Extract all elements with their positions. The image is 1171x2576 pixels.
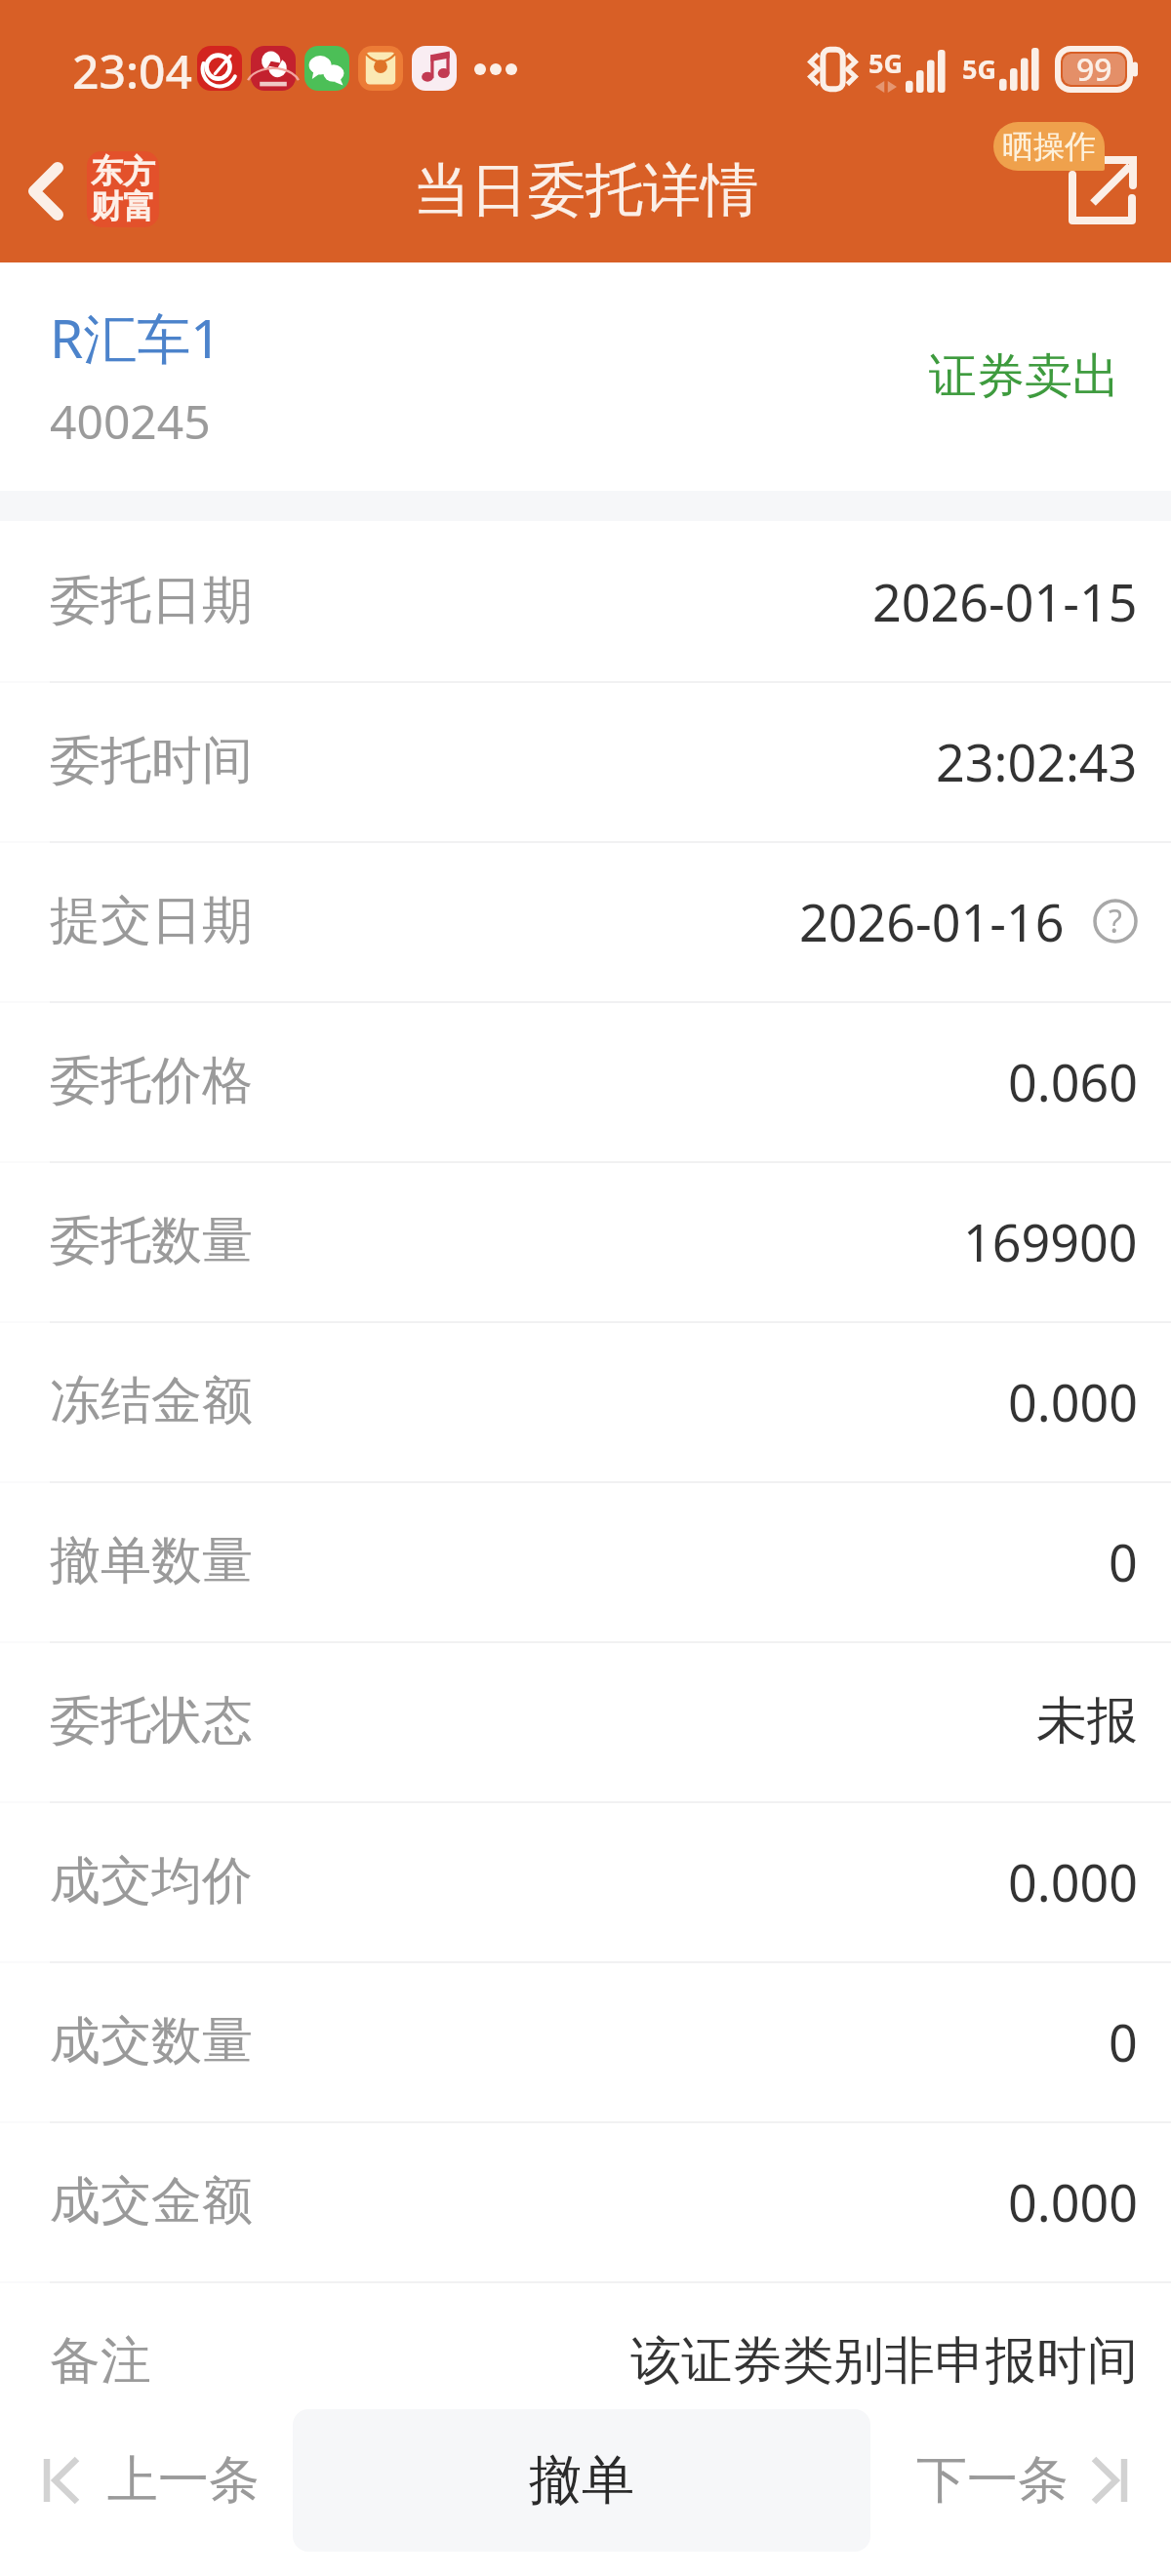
button[interactable]: R汇车1 xyxy=(0,262,1171,491)
staticText: 委托时间 xyxy=(50,729,253,793)
button[interactable]: 委托数量 xyxy=(0,1161,1171,1321)
staticText: 证券卖出 xyxy=(929,346,1120,407)
staticText: 下一条 xyxy=(916,2448,1069,2513)
staticText: 169900 xyxy=(963,1207,1138,1276)
staticText: 2026-01-16 xyxy=(799,887,1065,956)
staticText: 成交数量 xyxy=(50,2009,253,2073)
staticText: 委托状态 xyxy=(50,1689,253,1753)
staticText: 5G xyxy=(962,51,996,87)
staticText: 晒操作 xyxy=(1002,127,1096,166)
staticText: 0.000 xyxy=(1008,1367,1138,1436)
button[interactable]: 委托时间 xyxy=(0,681,1171,841)
staticText: 撤单数量 xyxy=(50,1529,253,1593)
button[interactable]: 冻结金额 xyxy=(0,1321,1171,1481)
staticText: 委托日期 xyxy=(50,569,253,633)
staticText: ? xyxy=(1109,900,1122,943)
staticText: 0.060 xyxy=(1008,1047,1138,1116)
button[interactable]: 上一条 xyxy=(44,2385,260,2576)
button[interactable]: 说明 xyxy=(1093,899,1138,944)
staticText: 2026-01-15 xyxy=(872,567,1138,636)
staticText: 0 xyxy=(1109,1527,1138,1596)
staticText: 23:04 xyxy=(72,39,192,102)
staticText: R汇车1 xyxy=(50,301,222,374)
staticText: 成交金额 xyxy=(50,2169,253,2234)
staticText: 未报 xyxy=(1036,1689,1138,1753)
staticText: 成交均价 xyxy=(50,1849,253,1913)
staticText: 0.000 xyxy=(1008,2167,1138,2236)
staticText: 提交日期 xyxy=(50,889,253,953)
button[interactable]: Share xyxy=(1049,139,1156,242)
staticText: 0.000 xyxy=(1008,1847,1138,1916)
staticText: 23:02:43 xyxy=(936,727,1138,796)
staticText: 该证券类别非申报时间 xyxy=(630,2329,1138,2394)
staticText: 委托数量 xyxy=(50,1209,253,1273)
staticText: 99 xyxy=(1076,48,1112,91)
staticText: 上一条 xyxy=(107,2448,260,2513)
staticText: 5G xyxy=(868,45,903,81)
button[interactable]: Back xyxy=(0,123,95,259)
button[interactable]: 提交日期 xyxy=(0,841,1171,1001)
staticText: 当日委托详情 xyxy=(413,154,758,226)
staticText: 冻结金额 xyxy=(50,1369,253,1433)
staticText: 撤单 xyxy=(529,2447,634,2514)
button[interactable]: 委托状态 xyxy=(0,1641,1171,1801)
button[interactable]: 成交均价 xyxy=(0,1801,1171,1961)
staticText: 备注 xyxy=(50,2329,151,2394)
button[interactable]: 撤单 xyxy=(293,2409,870,2552)
button[interactable]: 成交金额 xyxy=(0,2121,1171,2281)
staticText: 0 xyxy=(1109,2007,1138,2076)
staticText: 委托价格 xyxy=(50,1049,253,1113)
button[interactable]: 委托价格 xyxy=(0,1001,1171,1161)
button[interactable]: 备注 xyxy=(0,2281,1171,2441)
staticText: 东方 财富 xyxy=(91,151,155,227)
staticText: 400245 xyxy=(50,389,211,453)
button[interactable]: 撤单数量 xyxy=(0,1481,1171,1641)
button[interactable]: 东方财富 首页 xyxy=(87,151,159,227)
button[interactable]: 下一条 xyxy=(916,2385,1127,2576)
button[interactable]: 成交数量 xyxy=(0,1961,1171,2121)
button[interactable]: 委托日期 xyxy=(0,521,1171,681)
